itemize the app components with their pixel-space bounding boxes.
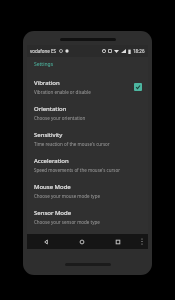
staticText: Settings: [34, 61, 54, 68]
staticText: Choose your mouse mode type: [34, 193, 100, 199]
staticText: Sensitivity: [34, 131, 63, 139]
staticText: Speed movements of the mouse's cursor: [34, 167, 121, 173]
button[interactable]: Home: [64, 234, 100, 249]
staticText: Choose your sensor mode type: [34, 219, 100, 225]
button[interactable]: Acceleration: [27, 152, 148, 178]
button[interactable]: Mouse Mode: [27, 178, 148, 204]
button[interactable]: Vibration toggle: [134, 83, 142, 91]
staticText: vodafone ES: [30, 48, 57, 54]
button[interactable]: Recent apps: [100, 234, 136, 249]
staticText: Sensor Mode: [34, 209, 72, 217]
staticText: Time reaction of the mouse's cursor: [34, 141, 110, 147]
staticText: 18:26: [133, 48, 145, 54]
button[interactable]: Sensor Mode: [27, 204, 148, 230]
staticText: Vibration: [34, 79, 60, 87]
button[interactable]: More options: [136, 234, 148, 249]
button[interactable]: Vibration: [27, 74, 148, 100]
button[interactable]: Orientation: [27, 100, 148, 126]
staticText: Vibration enable or disable: [34, 89, 91, 95]
staticText: Mouse Mode: [34, 183, 71, 191]
staticText: Orientation: [34, 105, 67, 113]
button[interactable]: Sensitivity: [27, 126, 148, 152]
staticText: Choose your orientation: [34, 115, 86, 121]
button[interactable]: Back: [27, 234, 64, 249]
staticText: Acceleration: [34, 157, 69, 165]
